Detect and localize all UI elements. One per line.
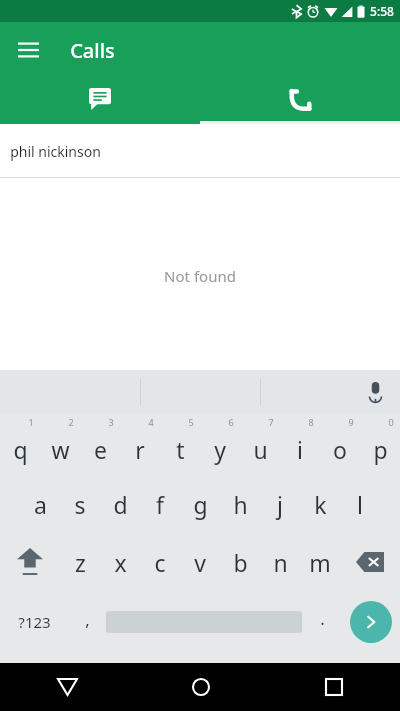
staticText: , <box>85 608 90 631</box>
staticText: v <box>194 547 206 578</box>
button[interactable]: c <box>140 533 180 591</box>
button[interactable]: , <box>68 591 106 653</box>
staticText: Calls <box>70 37 115 64</box>
button[interactable]: Open navigation drawer <box>6 28 50 72</box>
button[interactable]: o <box>320 413 360 475</box>
staticText: z <box>75 547 86 578</box>
staticText: Not found <box>164 266 236 286</box>
staticText: o <box>333 434 347 465</box>
staticText: c <box>154 547 166 578</box>
button[interactable]: e <box>80 413 120 475</box>
staticText: 1 <box>28 416 34 428</box>
button[interactable]: d <box>100 475 140 533</box>
staticText: 8 <box>308 416 314 428</box>
staticText: 6 <box>228 416 234 428</box>
button[interactable]: q <box>0 413 40 475</box>
staticText: 7 <box>268 416 274 428</box>
staticText: 0 <box>388 416 394 428</box>
staticText: i <box>297 434 303 465</box>
staticText: 5:58 <box>370 3 394 19</box>
staticText: ?123 <box>18 612 51 632</box>
button[interactable]: w <box>40 413 80 475</box>
staticText: e <box>94 434 107 465</box>
button[interactable]: Calls tab <box>200 78 400 124</box>
staticText: phil nickinson <box>10 142 101 161</box>
staticText: g <box>193 489 208 520</box>
staticText: s <box>74 489 86 520</box>
staticText: 9 <box>348 416 354 428</box>
button[interactable]: Voice input <box>358 375 392 409</box>
staticText: y <box>214 434 226 465</box>
button[interactable]: g <box>180 475 220 533</box>
staticText: q <box>13 434 28 465</box>
staticText: l <box>357 489 363 520</box>
staticText: 3 <box>108 416 114 428</box>
button[interactable]: s <box>60 475 100 533</box>
button[interactable]: t <box>160 413 200 475</box>
button[interactable]: Backspace <box>340 533 400 591</box>
staticText: a <box>34 489 47 520</box>
button[interactable]: Messages tab <box>0 78 200 124</box>
staticText: r <box>135 434 145 465</box>
button[interactable]: j <box>260 475 300 533</box>
staticText: h <box>233 489 248 520</box>
staticText: f <box>156 489 164 520</box>
staticText: d <box>113 489 128 520</box>
button[interactable]: . <box>302 591 342 653</box>
button[interactable]: phil nickinson <box>0 124 400 178</box>
button[interactable]: u <box>240 413 280 475</box>
staticText: 5 <box>188 416 194 428</box>
button[interactable]: p <box>360 413 400 475</box>
button[interactable]: v <box>180 533 220 591</box>
button[interactable]: r <box>120 413 160 475</box>
staticText: w <box>51 434 70 465</box>
staticText: u <box>253 434 268 465</box>
button[interactable]: Back <box>0 663 134 711</box>
button[interactable]: n <box>260 533 300 591</box>
button[interactable]: a <box>20 475 60 533</box>
button[interactable]: Space <box>106 591 302 653</box>
button[interactable]: b <box>220 533 260 591</box>
button[interactable]: h <box>220 475 260 533</box>
staticText: . <box>320 607 325 630</box>
button[interactable]: m <box>300 533 340 591</box>
staticText: b <box>233 547 248 578</box>
staticText: x <box>114 547 127 578</box>
staticText: t <box>176 434 185 465</box>
button[interactable]: z <box>60 533 100 591</box>
button[interactable]: Send <box>350 601 392 643</box>
staticText: n <box>273 547 288 578</box>
staticText: k <box>314 489 327 520</box>
staticText: 2 <box>68 416 74 428</box>
button[interactable]: Home <box>134 663 267 711</box>
button[interactable]: Shift <box>0 533 60 591</box>
staticText: m <box>309 547 331 578</box>
button[interactable]: ?123 <box>0 591 68 653</box>
button[interactable]: Recent apps <box>267 663 400 711</box>
button[interactable]: y <box>200 413 240 475</box>
staticText: j <box>277 489 283 520</box>
button[interactable]: i <box>280 413 320 475</box>
button[interactable]: f <box>140 475 180 533</box>
button[interactable]: l <box>340 475 380 533</box>
staticText: p <box>373 434 388 465</box>
button[interactable]: k <box>300 475 340 533</box>
button[interactable]: x <box>100 533 140 591</box>
staticText: 4 <box>148 416 154 428</box>
